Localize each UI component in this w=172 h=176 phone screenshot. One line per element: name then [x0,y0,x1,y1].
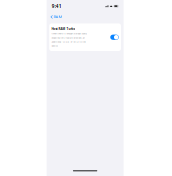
staticText: RAM [53,14,62,20]
staticText: When there is enough storage space, enab… [51,31,87,48]
staticText: Host RAM Turbo [51,27,75,31]
button[interactable]: RAM [49,12,64,21]
button[interactable]: Host RAM Turbo [110,35,119,40]
staticText: 9:41 [52,3,62,9]
